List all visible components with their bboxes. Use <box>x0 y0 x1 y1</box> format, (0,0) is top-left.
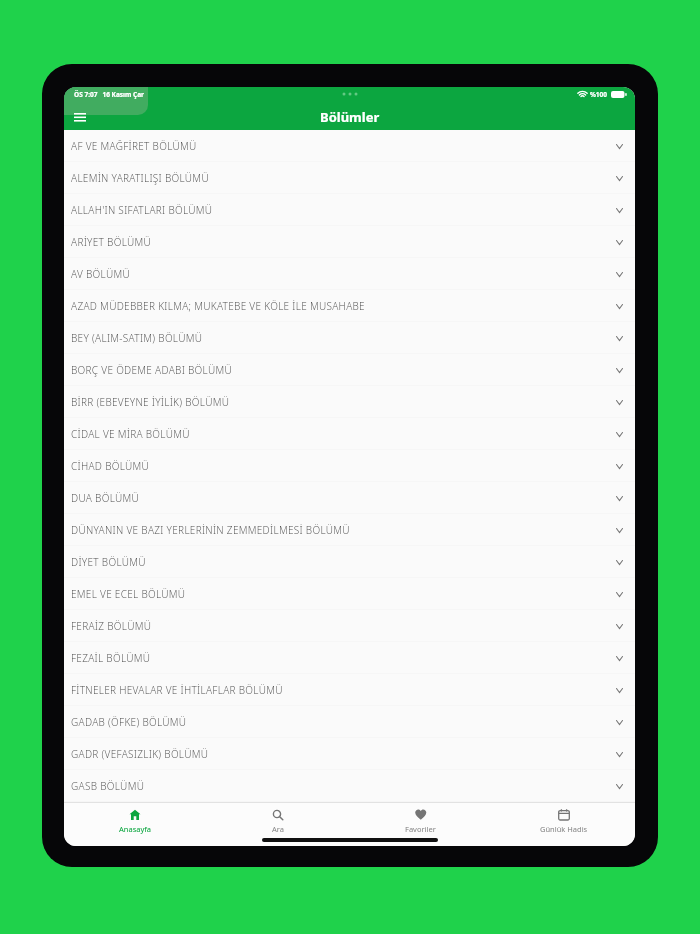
staticText: ARİYET BÖLÜMÜ <box>71 235 616 249</box>
staticText: GADR (VEFASIZLIK) BÖLÜMÜ <box>71 747 616 761</box>
staticText: FİTNELER HEVALAR VE İHTİLAFLAR BÖLÜMÜ <box>71 683 616 697</box>
staticText: DİYET BÖLÜMÜ <box>71 555 616 569</box>
staticText: Anasayfa <box>119 824 152 834</box>
button[interactable]: FEZAİL BÖLÜMÜ <box>64 642 635 674</box>
button[interactable]: Günlük Hadis <box>492 803 635 846</box>
button[interactable]: Ara <box>206 803 349 846</box>
staticText: GASB BÖLÜMÜ <box>71 779 616 793</box>
staticText: Ara <box>272 824 284 834</box>
button[interactable]: CİHAD BÖLÜMÜ <box>64 450 635 482</box>
staticText: DUA BÖLÜMÜ <box>71 491 616 505</box>
staticText: BİRR (EBEVEYNE İYİLİK) BÖLÜMÜ <box>71 395 616 409</box>
staticText: ÖS 7:07 16 Kasım Çar <box>74 90 145 99</box>
button[interactable]: EMEL VE ECEL BÖLÜMÜ <box>64 578 635 610</box>
button[interactable]: AZAD MÜDEBBER KILMA; MUKATEBE VE KÖLE İL… <box>64 290 635 322</box>
button[interactable]: Anasayfa <box>64 803 206 846</box>
staticText: DÜNYANIN VE BAZI YERLERİNİN ZEMMEDİLMESİ… <box>71 523 616 537</box>
button[interactable]: CİDAL VE MİRA BÖLÜMÜ <box>64 418 635 450</box>
staticText: %100 <box>590 90 608 99</box>
staticText: Günlük Hadis <box>540 824 588 834</box>
button[interactable]: BİRR (EBEVEYNE İYİLİK) BÖLÜMÜ <box>64 386 635 418</box>
staticText: ALEMİN YARATILIŞI BÖLÜMÜ <box>71 171 616 185</box>
staticText: GADAB (ÖFKE) BÖLÜMÜ <box>71 715 616 729</box>
staticText: AV BÖLÜMÜ <box>71 267 616 281</box>
button[interactable]: DİYET BÖLÜMÜ <box>64 546 635 578</box>
button[interactable]: DÜNYANIN VE BAZI YERLERİNİN ZEMMEDİLMESİ… <box>64 514 635 546</box>
staticText: CİHAD BÖLÜMÜ <box>71 459 616 473</box>
button[interactable]: ALEMİN YARATILIŞI BÖLÜMÜ <box>64 162 635 194</box>
button[interactable]: AF VE MAĞFİRET BÖLÜMÜ <box>64 130 635 162</box>
staticText: Favoriler <box>405 824 436 834</box>
button[interactable]: GADR (VEFASIZLIK) BÖLÜMÜ <box>64 738 635 770</box>
staticText: AF VE MAĞFİRET BÖLÜMÜ <box>71 139 616 153</box>
staticText: FEZAİL BÖLÜMÜ <box>71 651 616 665</box>
button[interactable]: FİTNELER HEVALAR VE İHTİLAFLAR BÖLÜMÜ <box>64 674 635 706</box>
staticText: CİDAL VE MİRA BÖLÜMÜ <box>71 427 616 441</box>
staticText: BORÇ VE ÖDEME ADABI BÖLÜMÜ <box>71 363 616 377</box>
button[interactable]: ALLAH'IN SIFATLARI BÖLÜMÜ <box>64 194 635 226</box>
staticText: FERAİZ BÖLÜMÜ <box>71 619 616 633</box>
button[interactable]: GASB BÖLÜMÜ <box>64 770 635 802</box>
button[interactable]: FERAİZ BÖLÜMÜ <box>64 610 635 642</box>
button[interactable]: Favoriler <box>349 803 492 846</box>
staticText: AZAD MÜDEBBER KILMA; MUKATEBE VE KÖLE İL… <box>71 299 616 313</box>
button[interactable]: GADAB (ÖFKE) BÖLÜMÜ <box>64 706 635 738</box>
staticText: Bölümler <box>320 108 380 126</box>
staticText: EMEL VE ECEL BÖLÜMÜ <box>71 587 616 601</box>
button[interactable]: ARİYET BÖLÜMÜ <box>64 226 635 258</box>
staticText: ALLAH'IN SIFATLARI BÖLÜMÜ <box>71 203 616 217</box>
button[interactable]: BEY (ALIM-SATIM) BÖLÜMÜ <box>64 322 635 354</box>
button[interactable]: BORÇ VE ÖDEME ADABI BÖLÜMÜ <box>64 354 635 386</box>
button[interactable]: AV BÖLÜMÜ <box>64 258 635 290</box>
button[interactable]: DUA BÖLÜMÜ <box>64 482 635 514</box>
staticText: BEY (ALIM-SATIM) BÖLÜMÜ <box>71 331 616 345</box>
button[interactable] <box>68 105 92 129</box>
